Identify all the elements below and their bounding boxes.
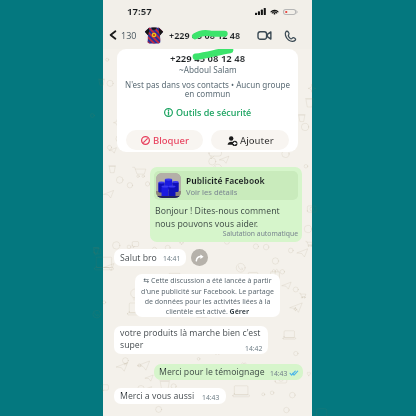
staticText: 14:43 bbox=[270, 369, 288, 378]
staticText: 17:57 bbox=[127, 5, 152, 18]
staticText: Publicité Facebook bbox=[186, 175, 265, 186]
staticText: Outils de sécurité bbox=[176, 106, 252, 118]
staticText: 14:41 bbox=[163, 254, 181, 263]
staticText: Merci a vous aussi bbox=[120, 390, 195, 402]
button[interactable]: +229 45 08 12 48 bbox=[169, 29, 254, 41]
staticText: Salutation automatique bbox=[154, 229, 298, 238]
staticText: Voir les détails bbox=[186, 187, 238, 197]
button[interactable]: ⇆ Cette discussion a été lancée à partir… bbox=[135, 274, 280, 317]
staticText: 14:43 bbox=[202, 393, 220, 402]
staticText: ⇆ Cette discussion a été lancée à partir… bbox=[141, 276, 274, 315]
button[interactable]: Ajouter bbox=[211, 130, 289, 150]
button[interactable]: Outils de sécurité bbox=[158, 105, 258, 119]
staticText: N'est pas dans vos contacts • Aucun grou… bbox=[117, 79, 298, 100]
staticText: +229 45 08 12 48 bbox=[170, 52, 246, 64]
staticText: votre produits là marche bien c'est supe… bbox=[120, 327, 261, 351]
staticText: Merci pour le témoignage bbox=[159, 366, 265, 378]
button[interactable]: Merci a vous aussi bbox=[114, 388, 226, 404]
staticText: 130 bbox=[121, 29, 137, 41]
staticText: +229 45 08 12 48 bbox=[169, 29, 241, 41]
staticText: Ajouter bbox=[240, 134, 274, 147]
button[interactable]: Forward bbox=[191, 249, 208, 266]
staticText: Bonjour ! Dites-nous comment nous pouvon… bbox=[155, 205, 280, 229]
other: Back bbox=[108, 30, 118, 40]
button[interactable]: Bloquer bbox=[126, 130, 203, 150]
button[interactable]: Voice call bbox=[279, 25, 300, 46]
button[interactable]: Publicité Facebook bbox=[154, 171, 298, 200]
button[interactable]: Merci pour le témoignage bbox=[154, 364, 303, 380]
staticText: ~Abdoul Salam bbox=[179, 64, 237, 75]
staticText: Bloquer bbox=[153, 134, 189, 147]
button[interactable]: votre produits là marche bien c'est supe… bbox=[114, 326, 268, 354]
button[interactable]: Back bbox=[103, 29, 139, 41]
staticText: Salut bro bbox=[120, 252, 157, 264]
button[interactable] bbox=[144, 25, 164, 45]
button[interactable]: Video call bbox=[254, 25, 275, 46]
button[interactable]: Salut bro bbox=[114, 249, 186, 266]
staticText: 14:42 bbox=[245, 344, 263, 353]
